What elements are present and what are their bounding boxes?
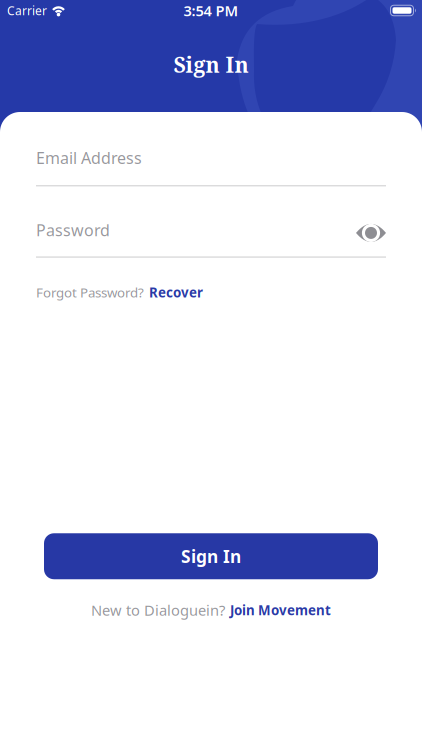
staticText: Password	[36, 219, 110, 240]
staticText: Sign In	[181, 545, 241, 568]
button[interactable]: Join Movement	[230, 601, 331, 619]
staticText: Join Movement	[230, 601, 331, 619]
button[interactable]: Recover	[149, 284, 203, 301]
staticText: 3:54 PM	[183, 1, 238, 20]
staticText: Recover	[149, 284, 203, 301]
staticText: Carrier	[7, 2, 47, 18]
staticText: Email Address	[36, 147, 142, 168]
button[interactable]: Sign In	[44, 533, 378, 579]
staticText: Forgot Password?	[36, 284, 144, 301]
staticText: New to Dialoguein?	[91, 600, 225, 620]
button[interactable]: Show password	[356, 223, 386, 242]
staticText: Sign In	[173, 50, 248, 79]
